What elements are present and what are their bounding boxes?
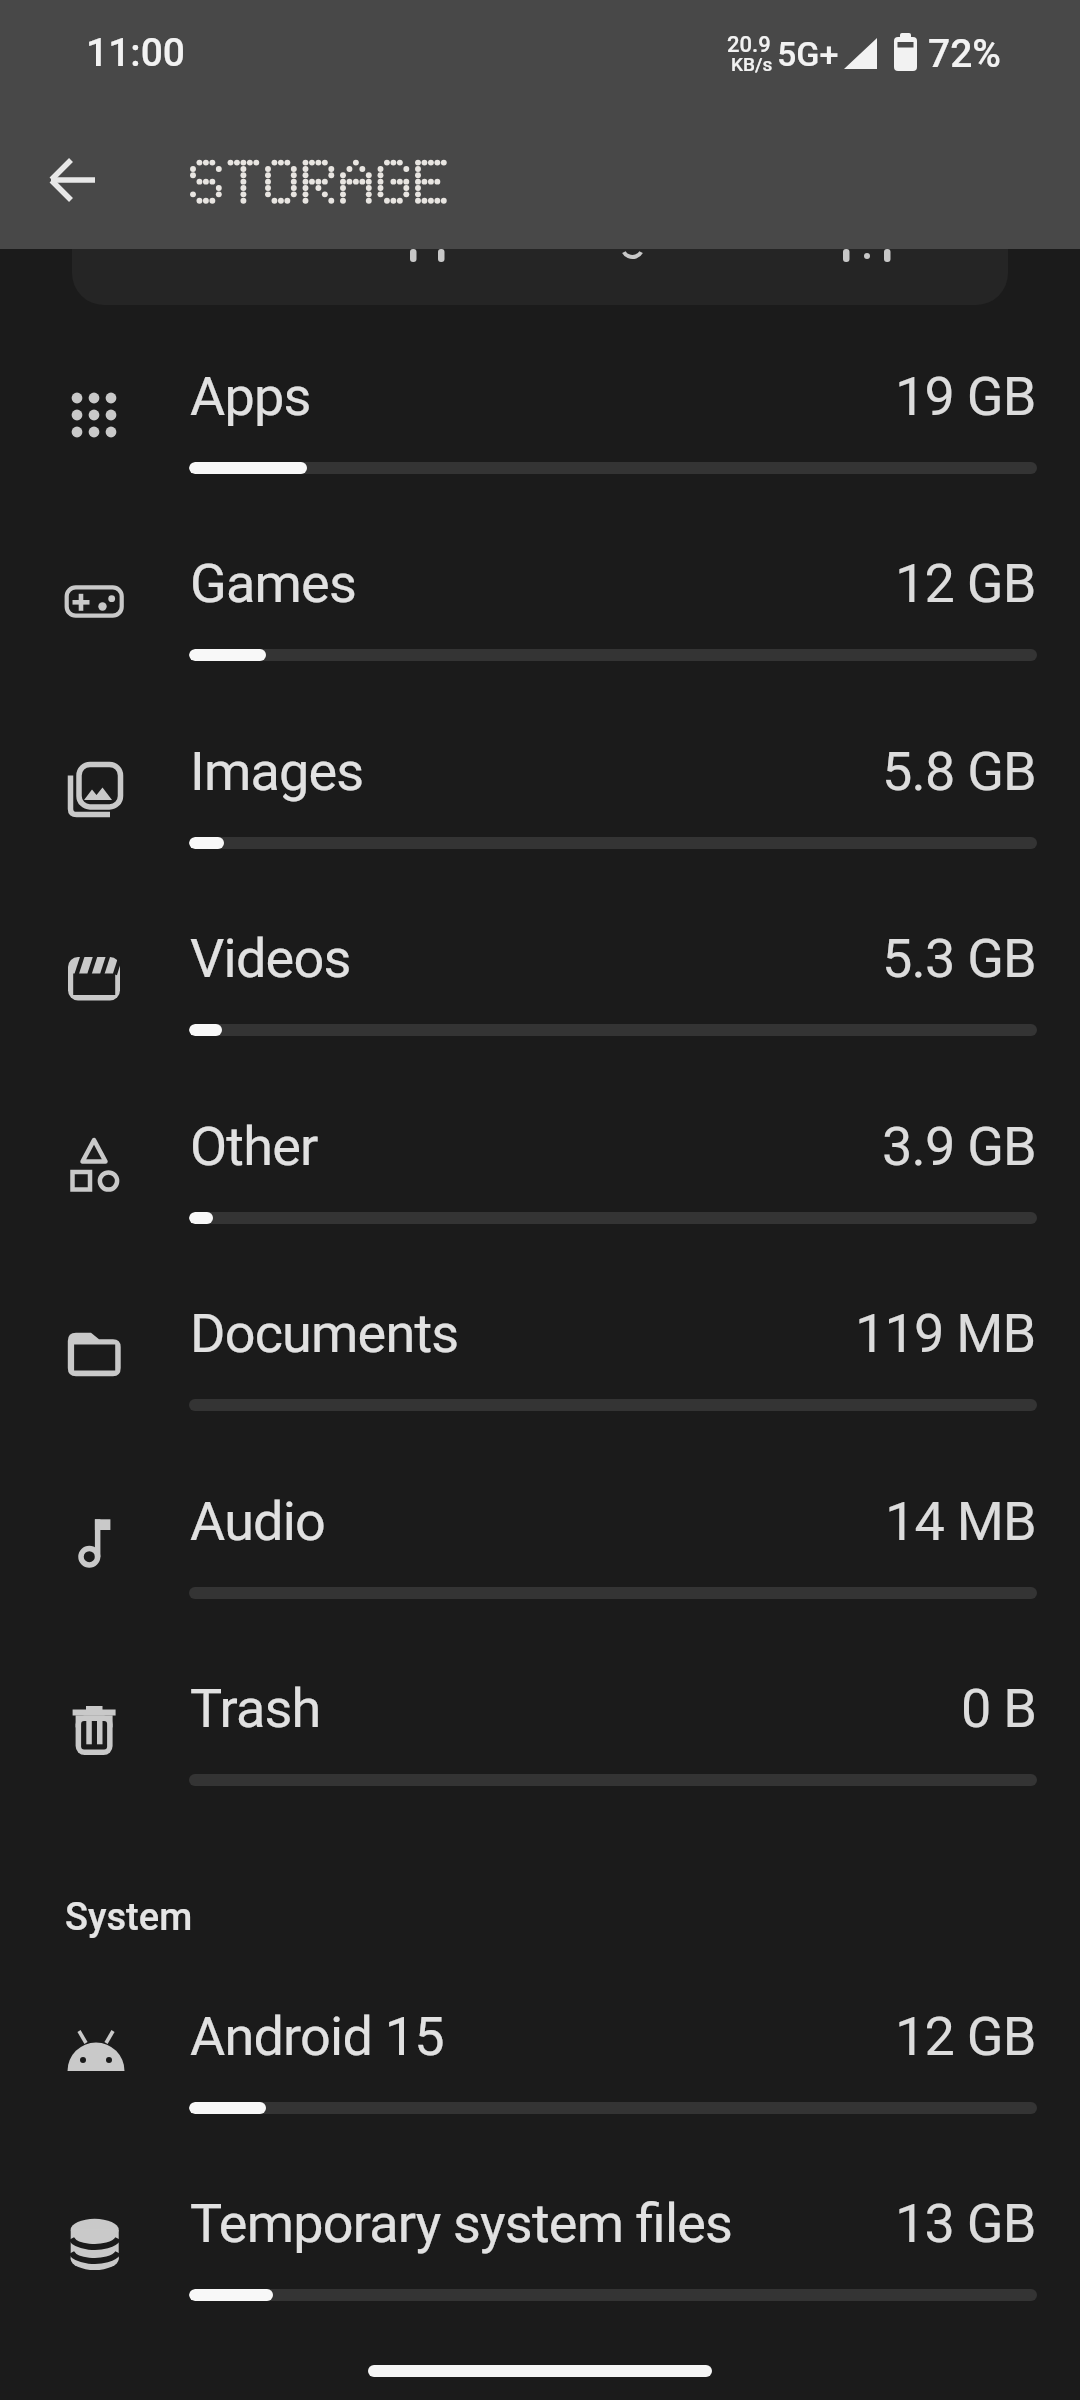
staticText: Other <box>190 1115 318 1178</box>
staticText: 12 GB <box>895 552 1036 615</box>
button[interactable]: Trash <box>0 1651 1080 1839</box>
button[interactable]: Other <box>0 1089 1080 1277</box>
button[interactable]: Games <box>0 526 1080 714</box>
staticText: Videos <box>190 927 351 990</box>
staticText: 19 GB <box>895 365 1036 428</box>
staticText: Android 15 <box>190 2005 444 2068</box>
staticText: 12 GB <box>895 2005 1036 2068</box>
staticText: Games <box>190 552 357 615</box>
staticText: Trash <box>190 1677 321 1740</box>
button[interactable] <box>28 135 118 225</box>
staticText: 14 MB <box>885 1490 1036 1553</box>
staticText: 5.8 GB <box>882 740 1036 803</box>
staticText: Apps <box>190 365 311 428</box>
staticText: 5G+ <box>777 34 839 74</box>
staticText: KB/s <box>731 53 773 75</box>
staticText: Temporary system files <box>190 2192 733 2255</box>
staticText: 0 B <box>961 1677 1036 1740</box>
button[interactable]: Videos <box>0 901 1080 1089</box>
staticText: Images <box>190 740 364 803</box>
staticText: Audio <box>190 1490 326 1553</box>
staticText: 13 GB <box>895 2192 1036 2255</box>
staticText: 119 MB <box>855 1302 1036 1365</box>
staticText: 3.9 GB <box>882 1115 1036 1178</box>
button[interactable]: Temporary system files <box>0 2166 1080 2354</box>
button[interactable]: Audio <box>0 1464 1080 1652</box>
staticText: 20.9 <box>727 32 771 58</box>
staticText: System <box>65 1895 193 1940</box>
button[interactable]: Android 15 <box>0 1979 1080 2167</box>
button[interactable]: Documents <box>0 1276 1080 1464</box>
staticText: 11:00 <box>86 30 186 76</box>
button[interactable]: Apps <box>0 339 1080 527</box>
staticText: Documents <box>190 1302 459 1365</box>
staticText: 5.3 GB <box>882 927 1036 990</box>
staticText: 72% <box>928 31 1001 77</box>
button[interactable]: Images <box>0 714 1080 902</box>
